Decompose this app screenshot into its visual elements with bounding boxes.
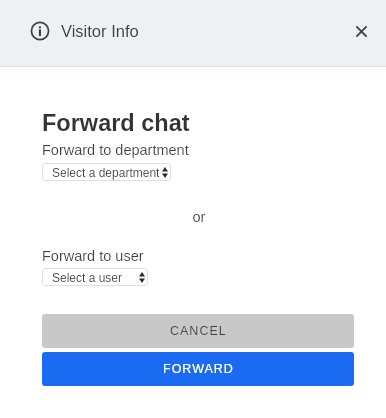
button[interactable]: Select a user <box>42 268 148 286</box>
staticText: or <box>43 209 355 225</box>
button[interactable]: CANCEL <box>42 314 354 348</box>
staticText: Forward chat <box>42 110 190 136</box>
staticText: Select a department <box>52 166 160 179</box>
button[interactable]: Close <box>351 21 371 41</box>
staticText: FORWARD <box>163 362 234 376</box>
staticText: CANCEL <box>170 324 227 338</box>
staticText: Visitor Info <box>61 22 139 40</box>
staticText: Select a user <box>52 271 123 284</box>
staticText: Forward to user <box>42 248 144 264</box>
button[interactable]: Select a department <box>42 163 171 181</box>
staticText: Forward to department <box>42 142 189 158</box>
button[interactable]: FORWARD <box>42 352 354 386</box>
